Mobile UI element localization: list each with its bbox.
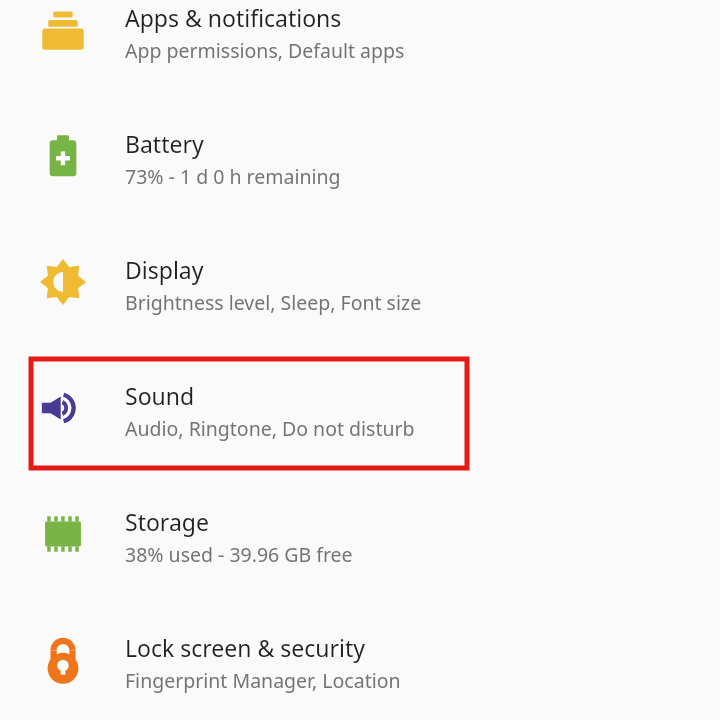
- staticText: Apps & notifications: [125, 2, 342, 33]
- button[interactable]: Storage: [0, 486, 720, 574]
- button[interactable]: Apps and notifications: [0, 0, 720, 70]
- staticText: Lock screen & security: [125, 632, 366, 663]
- other: Sound: [0, 360, 720, 448]
- staticText: Brightness level, Sleep, Font size: [125, 289, 422, 316]
- staticText: App permissions, Default apps: [125, 37, 405, 64]
- other: Storage: [0, 486, 720, 574]
- staticText: Audio, Ringtone, Do not disturb: [125, 415, 415, 442]
- staticText: Battery: [125, 128, 204, 159]
- button[interactable]: Sound: [0, 360, 720, 448]
- staticText: Display: [125, 254, 204, 285]
- button[interactable]: Lock screen and security: [0, 612, 720, 700]
- button[interactable]: Display: [0, 234, 720, 322]
- other: Battery: [0, 108, 720, 196]
- staticText: Storage: [125, 506, 209, 537]
- other: Display: [0, 234, 720, 322]
- staticText: Sound: [125, 380, 195, 411]
- staticText: 73% - 1 d 0 h remaining: [125, 163, 341, 190]
- staticText: Fingerprint Manager, Location: [125, 667, 401, 694]
- other: Lock screen and security: [0, 612, 720, 700]
- other: Apps and notifications: [0, 0, 720, 70]
- staticText: 38% used - 39.96 GB free: [125, 541, 353, 568]
- button[interactable]: Battery: [0, 108, 720, 196]
